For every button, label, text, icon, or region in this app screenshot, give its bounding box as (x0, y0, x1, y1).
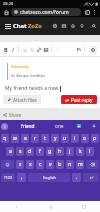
staticText: Chat (13, 22, 28, 30)
button[interactable]: Underline (21, 46, 28, 53)
button[interactable]: c (36, 160, 44, 169)
staticText: ZoZo (28, 22, 42, 30)
staticText: e (24, 135, 27, 142)
button[interactable]: s (16, 147, 24, 156)
staticText: My friend needs a new (5, 85, 59, 92)
button[interactable]: Strikethrough (28, 46, 35, 53)
button[interactable]: h (56, 147, 64, 156)
button[interactable]: Menu (2, 21, 13, 32)
staticText: w (13, 135, 17, 142)
button[interactable]: x (26, 160, 34, 169)
button[interactable]: k (76, 147, 84, 156)
button[interactable]: Shift (1, 160, 14, 169)
button[interactable]: Home (34, 201, 67, 212)
button[interactable]: u (61, 134, 69, 143)
button[interactable]: Attach files (3, 95, 41, 104)
staticText: v (49, 161, 52, 168)
button[interactable]: i (71, 134, 79, 143)
button[interactable]: Location (78, 22, 86, 30)
button[interactable]: B (2, 46, 9, 53)
button[interactable]: j (66, 147, 74, 156)
staticText: q (3, 135, 7, 142)
button[interactable]: Open toolbar (1, 123, 8, 130)
button[interactable]: Undo (75, 46, 82, 53)
button[interactable]: chatzozo.com/forum (11, 8, 81, 16)
staticText: o (83, 135, 87, 142)
staticText: m (78, 161, 83, 168)
button[interactable]: English (28, 173, 70, 182)
button[interactable]: z (16, 160, 24, 169)
button[interactable]: Recents (67, 201, 100, 212)
staticText: g (48, 148, 52, 155)
staticText: Attach files (13, 97, 37, 103)
staticText: B (4, 46, 8, 53)
staticText: ?123 (4, 175, 13, 180)
staticText: Post reply (71, 97, 93, 103)
button[interactable]: Share (3, 112, 22, 118)
button[interactable]: I (9, 46, 16, 53)
staticText: c (39, 161, 42, 168)
button[interactable]: w (11, 134, 19, 143)
button[interactable]: t (41, 134, 49, 143)
button[interactable]: Alerts (69, 22, 77, 30)
button[interactable]: More options (91, 9, 98, 16)
button[interactable]: Post reply (61, 95, 97, 104)
button[interactable]: Home (2, 8, 11, 17)
button[interactable]: f (36, 147, 44, 156)
button[interactable]: More formatting (54, 46, 61, 53)
button[interactable]: friend (8, 123, 47, 130)
button[interactable]: a (6, 147, 14, 156)
staticText: one (55, 123, 64, 130)
staticText: d (28, 148, 32, 155)
button[interactable]: Search (90, 22, 98, 30)
staticText: Share (9, 112, 22, 118)
staticText: chatzozo.com/forum (20, 9, 69, 16)
button[interactable]: b (56, 160, 64, 169)
staticText: r (34, 135, 37, 142)
button[interactable]: Account (51, 22, 59, 30)
button[interactable]: y (51, 134, 59, 143)
button[interactable]: Link (35, 46, 42, 53)
staticText: 6 (86, 10, 89, 15)
staticText: friend (21, 123, 35, 130)
button[interactable]: e (21, 134, 29, 143)
button[interactable]: g (46, 147, 54, 156)
staticText: z (19, 161, 22, 168)
button[interactable]: m (76, 160, 84, 169)
staticText: b (58, 161, 62, 168)
button[interactable]: n (66, 160, 74, 169)
staticText: , (21, 174, 23, 181)
button[interactable]: l (86, 147, 94, 156)
button[interactable]: Chat (13, 22, 42, 30)
staticText: j (69, 148, 71, 155)
staticText: t (44, 135, 46, 142)
button[interactable]: Enter (83, 173, 99, 182)
button[interactable]: Tabs (83, 8, 91, 16)
button[interactable]: r (31, 134, 39, 143)
button[interactable]: d (26, 147, 34, 156)
button[interactable]: v (46, 160, 54, 169)
button[interactable]: Emoji (87, 44, 98, 55)
staticText: . (76, 174, 78, 181)
button[interactable]: p (91, 134, 99, 143)
staticText: x (29, 161, 32, 168)
button[interactable]: Clipboard (75, 122, 83, 130)
button[interactable]: Insert image (42, 46, 49, 53)
button[interactable]: Backspace (86, 160, 99, 169)
staticText: u (63, 135, 67, 142)
button[interactable]: q (1, 134, 9, 143)
button[interactable]: ?123 (1, 173, 15, 182)
staticText: p (93, 135, 97, 142)
button[interactable]: Hide keyboard (90, 122, 98, 130)
button[interactable]: o (81, 134, 89, 143)
staticText: f (39, 148, 41, 155)
staticText: Ss Anupa madhan (11, 73, 46, 78)
button[interactable]: , (17, 173, 26, 182)
button[interactable]: . (72, 173, 81, 182)
staticText: h (58, 148, 62, 155)
button[interactable]: Inbox (60, 22, 68, 30)
staticText: s (19, 148, 22, 155)
button[interactable]: one (47, 123, 71, 130)
staticText: y (54, 135, 57, 142)
